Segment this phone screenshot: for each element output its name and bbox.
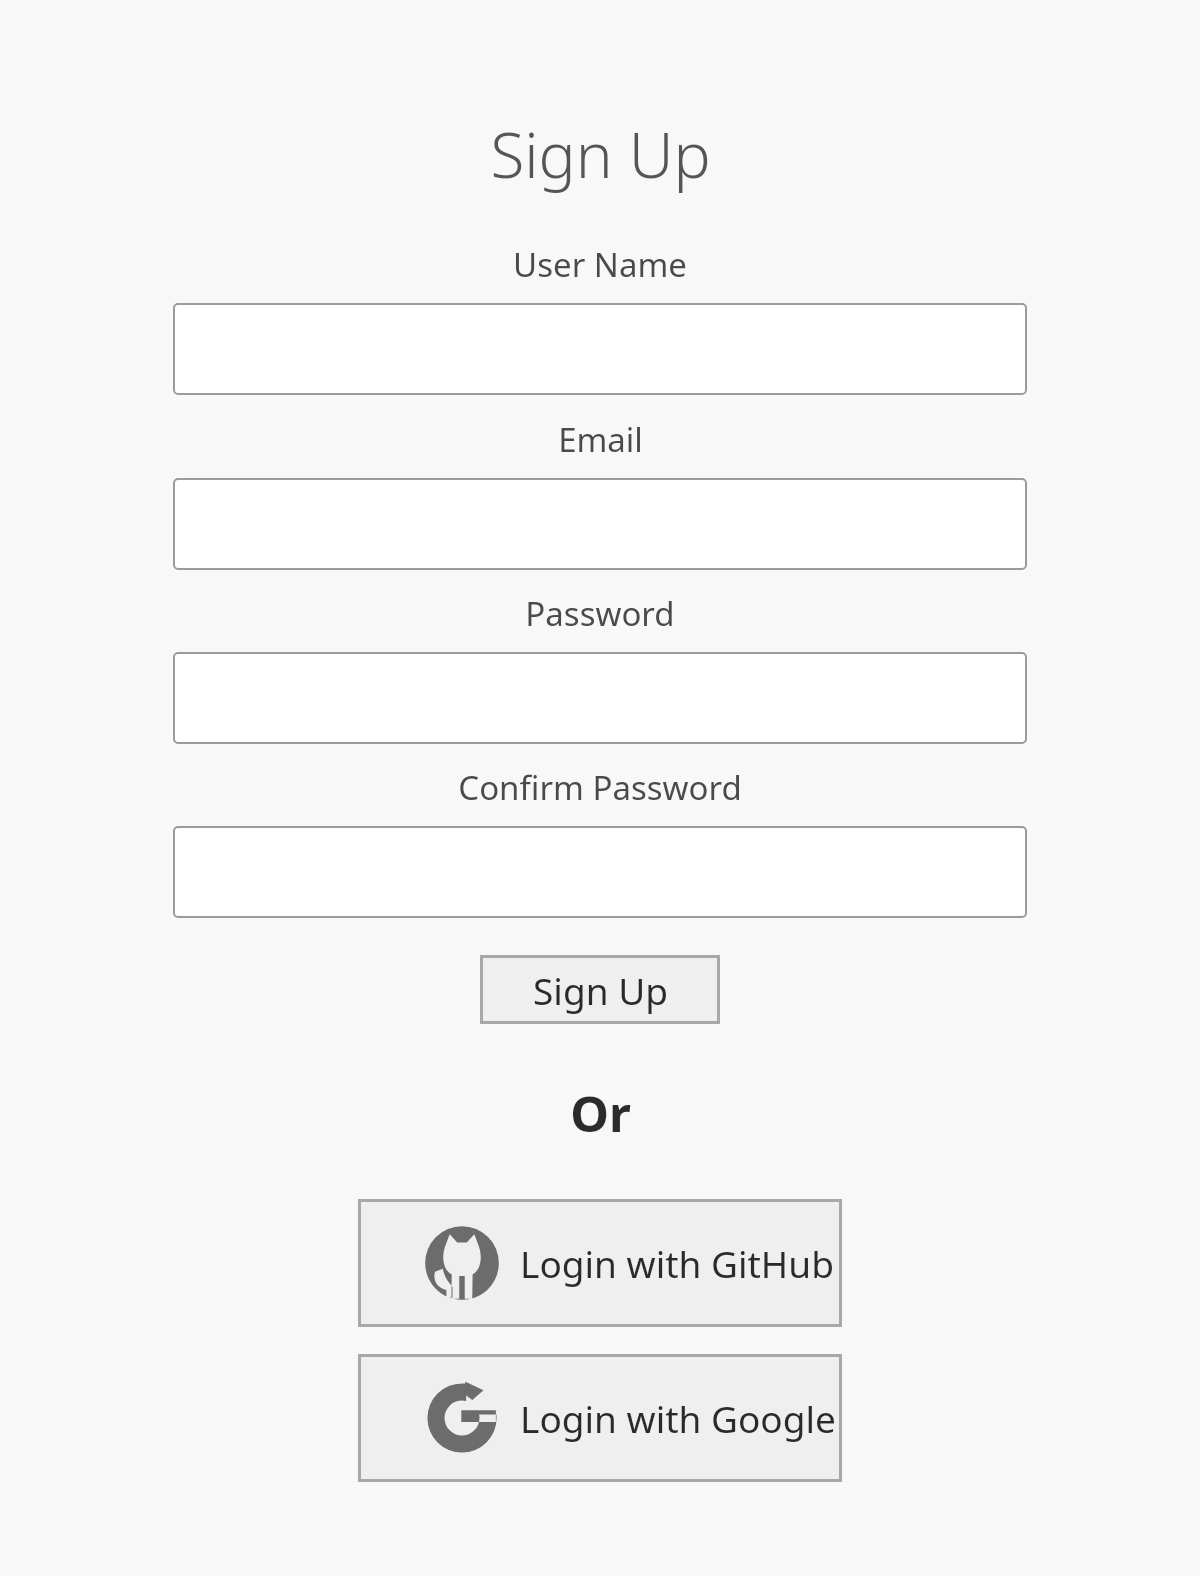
staticText: User Name xyxy=(513,242,687,287)
staticText: Password xyxy=(525,591,675,636)
staticText: Sign Up xyxy=(533,965,668,1015)
button[interactable]: User Name xyxy=(173,303,1027,395)
staticText: Login with Google xyxy=(520,1393,836,1443)
button[interactable]: Login with GitHub xyxy=(358,1199,842,1327)
button[interactable]: Confirm Password xyxy=(173,826,1027,918)
button[interactable]: Sign Up xyxy=(480,955,720,1024)
staticText: Sign Up xyxy=(490,112,711,196)
staticText: Login with GitHub xyxy=(520,1238,834,1288)
button[interactable]: Password xyxy=(173,652,1027,744)
button[interactable]: Email xyxy=(173,478,1027,570)
staticText: Email xyxy=(558,417,643,462)
staticText: Or xyxy=(570,1080,631,1147)
button[interactable]: Login with Google xyxy=(358,1354,842,1482)
staticText: Confirm Password xyxy=(458,765,742,810)
